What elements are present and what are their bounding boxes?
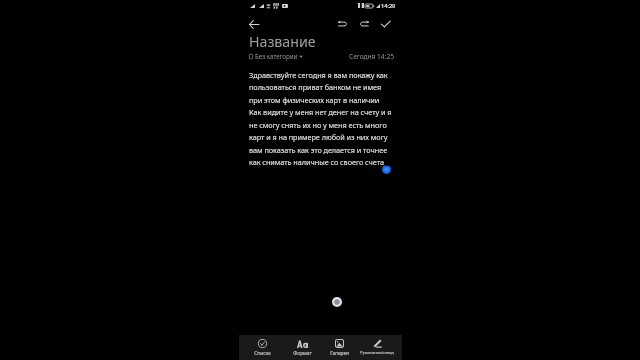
button[interactable]: Undo — [333, 15, 351, 33]
staticText: Как видите у меня нет денег на счету и я — [249, 107, 392, 117]
staticText: Сегодня 14:25 — [349, 52, 394, 61]
button[interactable]: Save — [376, 15, 394, 33]
staticText: вам показать как это делается и точнее — [249, 145, 388, 155]
staticText: не смогу снять их но у меня есть много — [249, 120, 387, 130]
staticText: Формат — [293, 350, 312, 357]
staticText: Здравствуйте сегодня я вам покажу как — [249, 70, 388, 80]
button[interactable]: Формат — [284, 335, 320, 360]
button[interactable]: Redo — [355, 15, 373, 33]
staticText: пользоваться приват банком не имея — [249, 82, 382, 92]
staticText: Галерея — [330, 350, 349, 357]
button[interactable]: Галерея — [321, 335, 357, 360]
staticText: Рукописный ввод — [360, 350, 394, 355]
staticText: Список — [254, 350, 271, 357]
button[interactable]: Список — [244, 335, 280, 360]
button[interactable]: Back — [246, 16, 262, 32]
staticText: Название — [249, 32, 316, 51]
staticText: при этом физических карт в наличии — [249, 95, 380, 105]
staticText: карт и я на примере любой из них могу — [249, 132, 388, 142]
button[interactable]: Рукописный ввод — [356, 335, 398, 360]
staticText: Без категории — [255, 52, 298, 60]
staticText: как снимать наличные со своего счета — [249, 157, 385, 167]
staticText: 14:29 — [381, 2, 396, 10]
